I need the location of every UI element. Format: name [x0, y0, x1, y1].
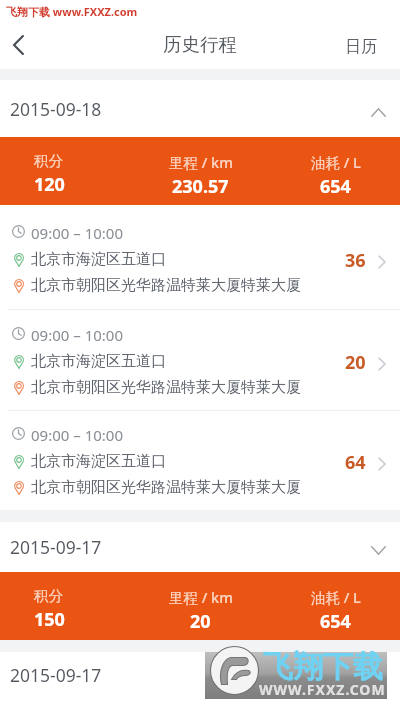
staticText: 里程 / km	[169, 587, 233, 607]
staticText: 09:00 – 10:00	[31, 325, 123, 345]
button[interactable]: 2015-09-17	[0, 652, 400, 713]
button[interactable]: 09:00 – 10:00	[0, 411, 400, 510]
staticText: 飞翔下载	[263, 648, 383, 686]
staticText: 09:00 – 10:00	[31, 425, 123, 445]
staticText: 150	[34, 607, 65, 632]
staticText: 里程 / km	[169, 152, 233, 172]
staticText: 654	[320, 174, 351, 199]
staticText: 09:00 – 10:00	[31, 223, 123, 243]
staticText: 北京市朝阳区光华路温特莱大厦特莱大厦	[31, 276, 301, 295]
staticText: 积分	[34, 152, 63, 170]
staticText: 油耗 / L	[311, 152, 361, 172]
staticText: 36	[345, 248, 366, 273]
button[interactable]: 日历	[345, 24, 377, 69]
staticText: 654	[320, 609, 351, 634]
staticText: 北京市海淀区五道口	[31, 352, 166, 371]
staticText: 2015-09-18	[10, 97, 102, 121]
staticText: 2015-09-17	[10, 535, 102, 559]
staticText: 油耗 / L	[311, 587, 361, 607]
staticText: 120	[34, 172, 65, 197]
staticText: 北京市海淀区五道口	[31, 250, 166, 269]
staticText: WWW.FXXZ.COM	[259, 680, 386, 699]
staticText: 日历	[345, 37, 377, 57]
staticText: 20	[190, 609, 211, 634]
staticText: 飞翔下载 www.FXXZ.com	[6, 4, 138, 19]
staticText: 历史行程	[163, 33, 237, 56]
button[interactable]: 2015-09-17	[0, 522, 400, 572]
button[interactable]: 2015-09-18	[0, 80, 400, 137]
staticText: 64	[345, 450, 366, 475]
staticText: 积分	[34, 587, 63, 605]
staticText: 北京市海淀区五道口	[31, 452, 166, 471]
button[interactable]: 09:00 – 10:00	[0, 310, 400, 410]
staticText: 北京市朝阳区光华路温特莱大厦特莱大厦	[31, 378, 301, 397]
staticText: 2015-09-17	[10, 663, 102, 687]
button[interactable]: Back	[0, 24, 37, 69]
staticText: 20	[345, 350, 366, 375]
button[interactable]: 09:00 – 10:00	[0, 208, 400, 309]
staticText: 北京市朝阳区光华路温特莱大厦特莱大厦	[31, 478, 301, 497]
staticText: 230.57	[172, 174, 229, 199]
